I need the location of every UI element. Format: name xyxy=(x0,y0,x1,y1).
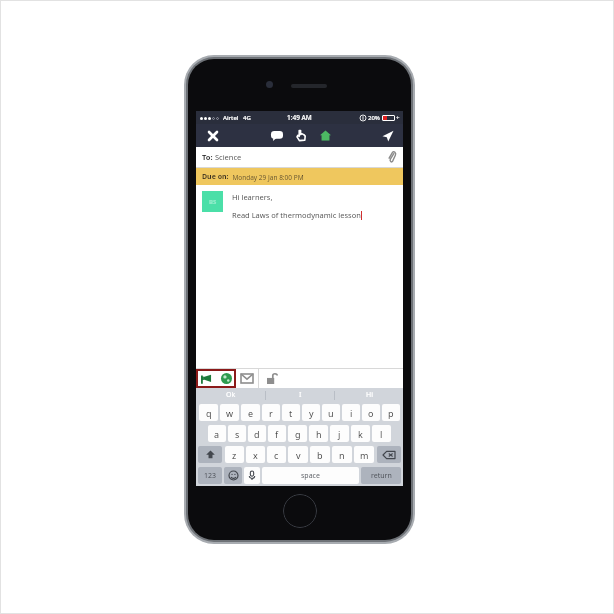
staticText: w xyxy=(226,407,234,419)
staticText: Airtel xyxy=(223,114,239,122)
button[interactable]: e xyxy=(241,404,260,421)
button[interactable]: Hi xyxy=(335,388,403,402)
staticText: z xyxy=(232,449,237,461)
button[interactable]: m xyxy=(354,446,374,463)
staticText: return xyxy=(371,471,392,481)
staticText: Hi xyxy=(366,390,373,400)
button[interactable]: Attach xyxy=(381,147,403,167)
staticText: a xyxy=(214,428,220,440)
button[interactable]: Announce xyxy=(196,369,216,388)
staticText: t xyxy=(289,407,293,419)
staticText: + xyxy=(396,114,400,122)
button[interactable]: y xyxy=(302,404,320,421)
button[interactable]: a xyxy=(208,425,226,442)
staticText: k xyxy=(358,428,363,440)
staticText: s xyxy=(235,428,240,440)
staticText: 4G xyxy=(243,114,251,122)
button[interactable]: s xyxy=(228,425,246,442)
staticText: To: xyxy=(202,152,213,162)
button[interactable]: Backspace xyxy=(377,446,401,463)
staticText: 1:49 AM xyxy=(287,113,312,122)
staticText: Science xyxy=(213,152,242,162)
button[interactable]: Mail xyxy=(236,369,258,388)
staticText: f xyxy=(275,428,279,440)
staticText: g xyxy=(295,428,301,440)
button[interactable]: Comments xyxy=(265,124,289,147)
button[interactable]: Ok xyxy=(196,388,265,402)
staticText: l xyxy=(380,428,383,440)
staticText: p xyxy=(388,407,394,419)
staticText: h xyxy=(316,428,322,440)
button[interactable]: g xyxy=(288,425,307,442)
button[interactable]: Home xyxy=(313,124,337,147)
button[interactable]: q xyxy=(199,404,218,421)
button[interactable]: n xyxy=(332,446,352,463)
button[interactable]: u xyxy=(322,404,340,421)
staticText: v xyxy=(296,449,301,461)
button[interactable]: Emoji xyxy=(224,467,242,484)
button[interactable]: f xyxy=(268,425,286,442)
button[interactable]: p xyxy=(382,404,400,421)
button[interactable]: w xyxy=(220,404,239,421)
button[interactable]: o xyxy=(362,404,380,421)
button[interactable]: return xyxy=(361,467,401,484)
button[interactable]: t xyxy=(282,404,300,421)
staticText: b xyxy=(317,449,323,461)
staticText: c xyxy=(274,449,279,461)
button[interactable]: Touch xyxy=(289,124,313,147)
button[interactable]: Unlock xyxy=(259,369,285,388)
staticText: j xyxy=(338,428,341,440)
button[interactable]: d xyxy=(248,425,266,442)
staticText: BS xyxy=(209,198,217,206)
staticText: n xyxy=(339,449,345,461)
button[interactable]: j xyxy=(330,425,349,442)
button[interactable]: Home button xyxy=(283,494,317,528)
staticText: Monday 29 Jan 8:00 PM xyxy=(229,173,304,182)
button[interactable]: Public xyxy=(216,369,236,388)
button[interactable]: x xyxy=(246,446,265,463)
button[interactable]: l xyxy=(372,425,391,442)
button[interactable]: k xyxy=(351,425,370,442)
staticText: 20% xyxy=(368,114,380,122)
staticText: Ok xyxy=(226,390,236,400)
staticText: r xyxy=(269,407,273,419)
button[interactable]: space xyxy=(262,467,359,484)
button[interactable]: r xyxy=(262,404,280,421)
button[interactable]: 123 xyxy=(198,467,222,484)
staticText: Read Laws of thermodynamic lesson xyxy=(232,210,361,220)
button[interactable]: v xyxy=(288,446,308,463)
button[interactable]: i xyxy=(342,404,360,421)
button[interactable]: Shift xyxy=(198,446,222,463)
staticText: i xyxy=(350,407,353,419)
button[interactable]: Close xyxy=(196,124,230,147)
button[interactable]: Send xyxy=(373,124,403,147)
staticText: I xyxy=(299,390,302,400)
button[interactable]: h xyxy=(309,425,328,442)
staticText: x xyxy=(253,449,258,461)
button[interactable]: I xyxy=(266,388,334,402)
staticText: q xyxy=(206,407,212,419)
button[interactable]: Voice input xyxy=(244,467,260,484)
staticText: o xyxy=(368,407,374,419)
staticText: Hi learners, xyxy=(232,192,273,202)
staticText: u xyxy=(328,407,334,419)
staticText: d xyxy=(254,428,260,440)
staticText: 123 xyxy=(204,471,217,481)
button[interactable]: z xyxy=(225,446,244,463)
staticText: space xyxy=(301,471,320,481)
button[interactable]: b xyxy=(310,446,330,463)
staticText: Due on: xyxy=(202,172,229,182)
button[interactable]: c xyxy=(267,446,286,463)
staticText: m xyxy=(360,449,369,461)
staticText: e xyxy=(248,407,254,419)
staticText: y xyxy=(309,407,314,419)
